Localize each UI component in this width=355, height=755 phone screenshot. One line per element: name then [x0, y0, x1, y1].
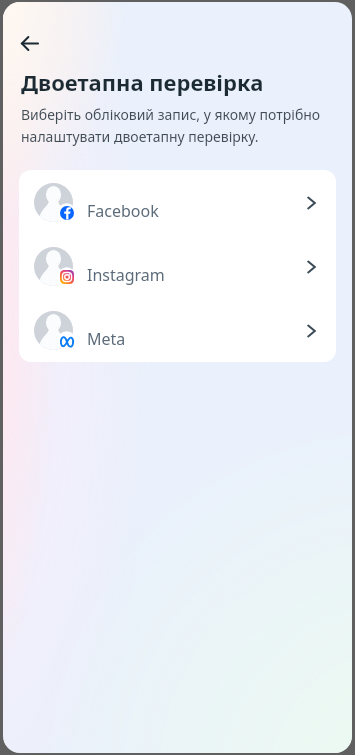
- staticText: Двоетапна перевірка: [21, 67, 264, 97]
- button[interactable]: Instagram: [19, 234, 336, 298]
- staticText: Виберіть обліковий запис, у якому потріб…: [21, 105, 334, 146]
- button[interactable]: Facebook: [19, 170, 336, 234]
- staticText: Instagram: [87, 264, 165, 286]
- button[interactable]: Meta: [19, 298, 336, 362]
- staticText: Facebook: [87, 200, 159, 222]
- button[interactable]: Back: [9, 23, 49, 63]
- staticText: Meta: [87, 328, 126, 350]
